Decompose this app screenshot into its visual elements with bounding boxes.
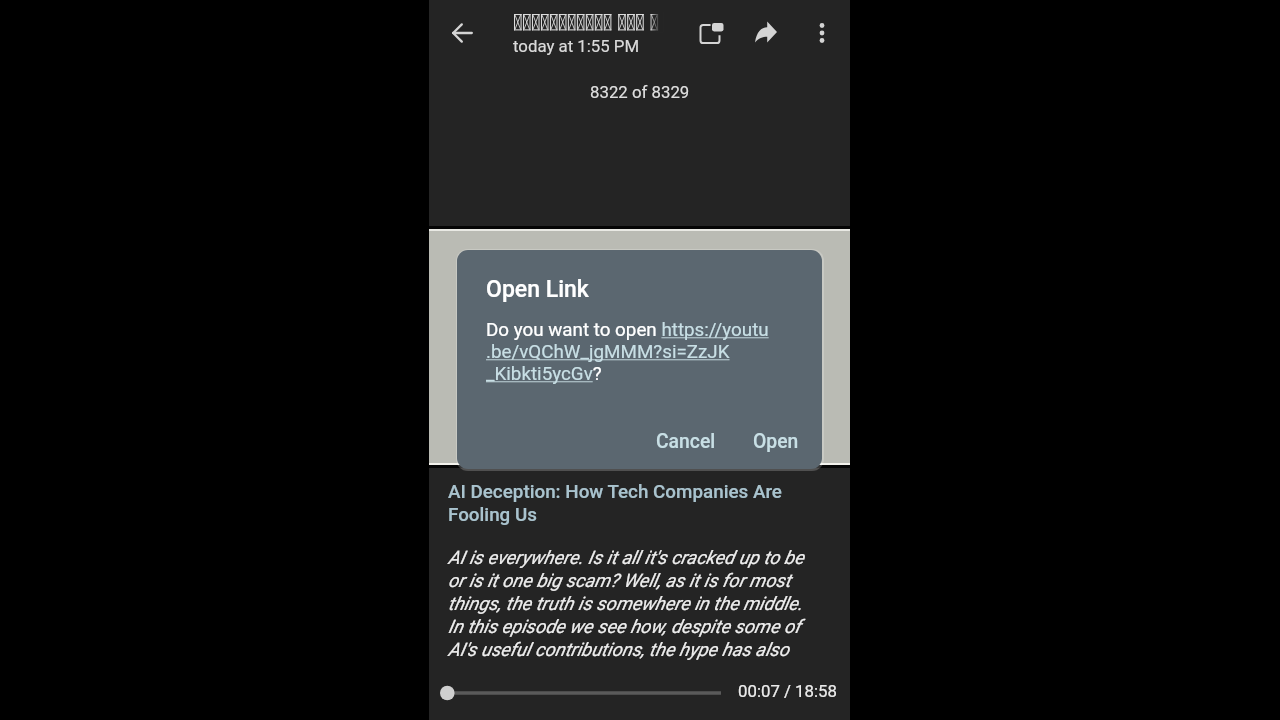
staticText: 00:07 / 18:58 <box>738 681 837 701</box>
staticText: Open Link <box>486 276 589 303</box>
button[interactable]: Picture in picture <box>690 13 734 57</box>
staticText: Cancel <box>656 430 716 452</box>
staticText: .be/vQChW_jgMMM?si=ZzJK <box>486 341 730 363</box>
button[interactable]: Cancel <box>647 422 725 460</box>
button[interactable]: More options <box>800 11 844 55</box>
button[interactable]: Share <box>744 11 788 55</box>
staticText: AI is everywhere. Is it all it's cracked… <box>448 547 814 660</box>
button[interactable]: Seek bar <box>440 682 721 704</box>
staticText: Open <box>753 430 799 452</box>
staticText: _Kibkti5ycGv? <box>486 363 602 385</box>
staticText: 8322 of 8329 <box>590 82 690 102</box>
button[interactable]: Back <box>442 13 486 57</box>
staticText: Do you want to open https://youtu <box>486 319 769 341</box>
button[interactable]: Open <box>744 422 808 460</box>
button[interactable]: Video <box>429 226 850 468</box>
staticText: today at 1:55 PM <box>513 36 640 56</box>
staticText: AI Deception: How Tech Companies Are Foo… <box>448 481 808 525</box>
